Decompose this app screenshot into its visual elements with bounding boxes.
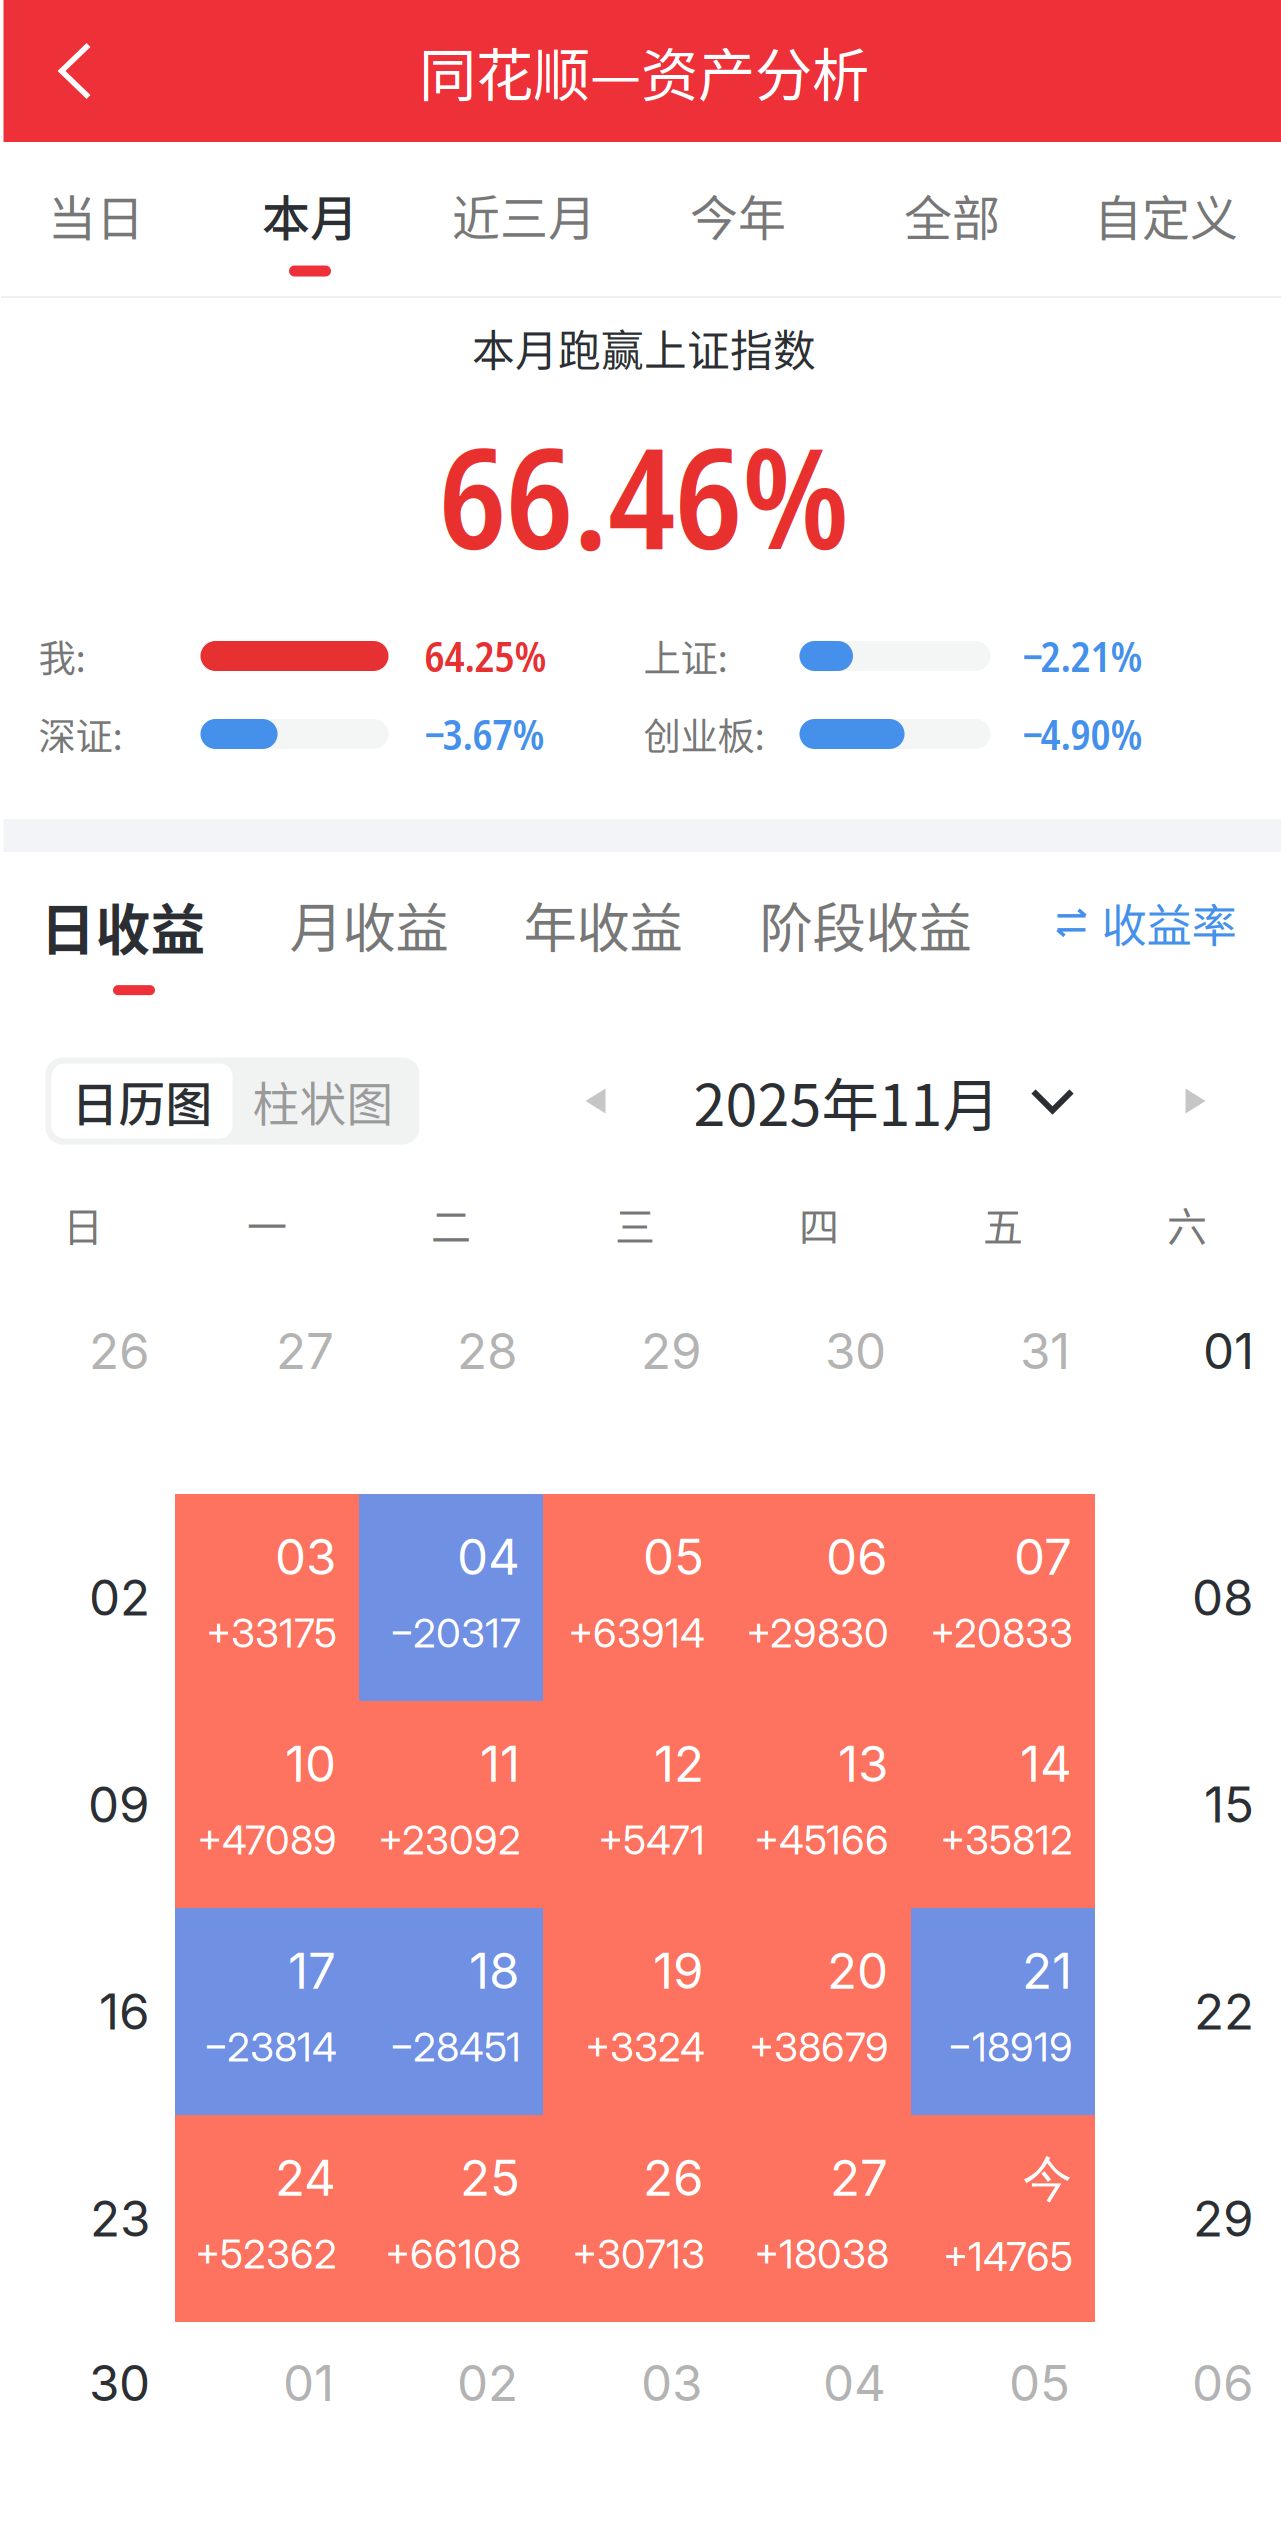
staticText: 05	[1009, 2353, 1070, 2413]
staticText: 03	[641, 2353, 702, 2413]
staticText: 我:	[38, 629, 85, 683]
button[interactable]: 返回	[3, 0, 131, 142]
staticText: 自定义	[1094, 180, 1238, 249]
staticText: 01	[283, 2353, 334, 2413]
staticText: 本月跑赢上证指数	[472, 317, 816, 379]
staticText: 阶段收益	[759, 886, 971, 963]
button[interactable]: 柱状图	[232, 1063, 413, 1138]
button[interactable]: 下个月	[1165, 1057, 1225, 1145]
staticText: 11	[480, 1734, 520, 1794]
staticText: 深证:	[38, 707, 122, 761]
staticText: 15	[1204, 1775, 1254, 1834]
staticText: +33175	[206, 1609, 337, 1657]
staticText: −20317	[389, 1609, 521, 1657]
staticText: 30	[89, 2353, 150, 2413]
button[interactable]: 日历图	[51, 1063, 232, 1138]
staticText: 31	[1020, 1321, 1070, 1381]
staticText: 收益率	[1101, 890, 1236, 956]
staticText: 07	[1014, 1527, 1072, 1587]
staticText: +20833	[930, 1609, 1073, 1657]
staticText: +35812	[940, 1816, 1073, 1864]
staticText: 06	[826, 1527, 888, 1587]
staticText: 26	[89, 1321, 150, 1381]
staticText: +3324	[585, 2023, 705, 2071]
button[interactable]: 收益率	[1055, 852, 1281, 1020]
staticText: −3.67%	[424, 706, 544, 762]
staticText: 日历图	[71, 1067, 212, 1135]
staticText: +5471	[598, 1816, 705, 1864]
button[interactable]: 上个月	[565, 1057, 625, 1145]
staticText: −23814	[203, 2023, 337, 2071]
staticText: 29	[641, 1321, 702, 1381]
staticText: 13	[838, 1734, 888, 1794]
staticText: 当日	[48, 180, 144, 249]
staticText: 全部	[904, 180, 1000, 249]
button[interactable]: 年收益	[483, 852, 719, 1020]
button[interactable]: 2025年11月	[693, 1057, 1074, 1145]
staticText: 五	[983, 1195, 1023, 1253]
staticText: +63914	[568, 1609, 705, 1657]
staticText: 14	[1020, 1734, 1072, 1794]
staticText: 21	[1022, 1941, 1072, 2001]
staticText: 日	[63, 1195, 103, 1253]
button[interactable]: 日收益	[3, 852, 249, 1020]
staticText: 20	[827, 1941, 888, 2001]
staticText: +47089	[197, 1816, 337, 1864]
staticText: 30	[825, 1321, 886, 1381]
button[interactable]: 当日	[0, 142, 203, 298]
staticText: 日收益	[40, 886, 205, 965]
staticText: −28451	[389, 2023, 521, 2071]
staticText: 26	[643, 2148, 704, 2208]
staticText: 年收益	[523, 886, 682, 963]
staticText: 28	[457, 1321, 518, 1381]
staticText: 今	[1023, 2148, 1072, 2210]
staticText: 04	[457, 1527, 520, 1587]
staticText: 17	[288, 1941, 336, 2001]
staticText: 05	[643, 1527, 704, 1587]
staticText: +45166	[754, 1816, 889, 1864]
staticText: −18919	[947, 2023, 1073, 2071]
staticText: 今年	[690, 180, 786, 249]
staticText: 同花顺—资产分析	[419, 29, 869, 112]
staticText: 08	[1192, 1568, 1254, 1627]
button[interactable]: 月收益	[249, 852, 483, 1020]
staticText: +52362	[195, 2230, 337, 2278]
staticText: 一	[247, 1195, 287, 1253]
staticText: 六	[1167, 1195, 1207, 1253]
staticText: 16	[99, 1982, 150, 2041]
staticText: +29830	[746, 1609, 889, 1657]
button[interactable]: 全部	[845, 142, 1059, 298]
staticText: 27	[276, 1321, 334, 1381]
button[interactable]: 今年	[631, 142, 845, 298]
staticText: −4.90%	[1022, 706, 1142, 762]
staticText: 近三月	[452, 180, 596, 249]
staticText: 64.25%	[424, 628, 546, 684]
staticText: 66.46%	[439, 401, 849, 590]
button[interactable]: 自定义	[1059, 142, 1273, 298]
staticText: −2.21%	[1022, 628, 1142, 684]
staticText: 27	[830, 2148, 888, 2208]
staticText: 19	[653, 1941, 704, 2001]
staticText: 创业板:	[643, 707, 764, 761]
staticText: 29	[1193, 2189, 1254, 2248]
button[interactable]: 近三月	[417, 142, 631, 298]
staticText: 本月	[262, 180, 358, 249]
staticText: +23092	[378, 1816, 521, 1864]
staticText: 24	[275, 2148, 336, 2208]
staticText: +38679	[749, 2023, 889, 2071]
staticText: +14765	[943, 2232, 1073, 2280]
staticText: 12	[654, 1734, 704, 1794]
staticText: 25	[460, 2148, 520, 2208]
staticText: 二	[431, 1195, 471, 1253]
staticText: 柱状图	[252, 1067, 393, 1135]
staticText: 22	[1194, 1982, 1254, 2041]
button[interactable]: 阶段收益	[719, 852, 971, 1020]
staticText: 09	[88, 1775, 150, 1834]
staticText: +30713	[572, 2230, 705, 2278]
staticText: 上证:	[643, 629, 727, 683]
staticText: 18	[469, 1941, 520, 2001]
staticText: 06	[1192, 2353, 1254, 2413]
staticText: 10	[285, 1734, 336, 1794]
staticText: 01	[1203, 1321, 1254, 1381]
button[interactable]: 本月	[203, 142, 417, 298]
